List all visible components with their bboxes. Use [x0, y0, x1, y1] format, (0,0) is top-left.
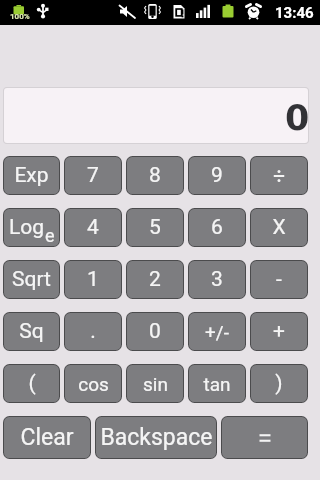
button[interactable]: 8	[127, 157, 183, 194]
staticText: 8	[149, 163, 161, 188]
button[interactable]: =	[222, 417, 307, 458]
staticText: +	[273, 319, 285, 344]
button[interactable]: 5	[127, 209, 183, 246]
button[interactable]: tan	[189, 365, 245, 402]
button[interactable]: Clear	[4, 417, 90, 458]
staticText: -	[276, 267, 282, 292]
button[interactable]: 0	[127, 313, 183, 350]
button[interactable]: )	[251, 365, 307, 402]
staticText: Sqrt	[12, 267, 51, 292]
button[interactable]: Sq	[4, 313, 59, 350]
staticText: 4	[87, 215, 99, 240]
button[interactable]: 3	[189, 261, 245, 298]
staticText: X	[272, 215, 286, 240]
staticText: 100%	[10, 12, 30, 21]
staticText: sin	[143, 373, 168, 395]
button[interactable]: Log	[4, 209, 59, 246]
button[interactable]: X	[251, 209, 307, 246]
staticText: Backspace	[100, 424, 213, 451]
staticText: 2	[149, 267, 161, 292]
staticText: Clear	[20, 424, 74, 451]
staticText: 5	[149, 215, 161, 240]
staticText: (	[28, 371, 36, 396]
staticText: 0	[285, 98, 308, 139]
button[interactable]: -	[251, 261, 307, 298]
button[interactable]: sin	[127, 365, 183, 402]
staticText: Exp	[14, 163, 49, 188]
button[interactable]: +/-	[189, 313, 245, 350]
staticText: 7	[87, 163, 99, 188]
staticText: tan	[203, 373, 231, 395]
staticText: Log	[9, 215, 45, 240]
button[interactable]: 0	[4, 88, 308, 143]
button[interactable]: 4	[65, 209, 121, 246]
button[interactable]: +	[251, 313, 307, 350]
button[interactable]: 6	[189, 209, 245, 246]
staticText: Sq	[19, 319, 44, 344]
staticText: cos	[78, 373, 109, 395]
button[interactable]: .	[65, 313, 121, 350]
staticText: +/-	[205, 321, 229, 343]
button[interactable]: Sqrt	[4, 261, 59, 298]
staticText: e	[45, 225, 55, 246]
button[interactable]: ÷	[251, 157, 307, 194]
button[interactable]: cos	[65, 365, 121, 402]
button[interactable]: Backspace	[96, 417, 216, 458]
button[interactable]: 1	[65, 261, 121, 298]
staticText: 0	[149, 319, 161, 344]
staticText: .	[90, 319, 96, 344]
button[interactable]: Exp	[4, 157, 59, 194]
staticText: )	[275, 371, 283, 396]
staticText: 3	[211, 267, 223, 292]
staticText: 1	[87, 267, 99, 292]
staticText: 6	[211, 215, 223, 240]
staticText: 9	[211, 163, 223, 188]
staticText: 13:46	[275, 4, 314, 22]
button[interactable]: 7	[65, 157, 121, 194]
button[interactable]: 9	[189, 157, 245, 194]
button[interactable]: (	[4, 365, 59, 402]
button[interactable]: 2	[127, 261, 183, 298]
